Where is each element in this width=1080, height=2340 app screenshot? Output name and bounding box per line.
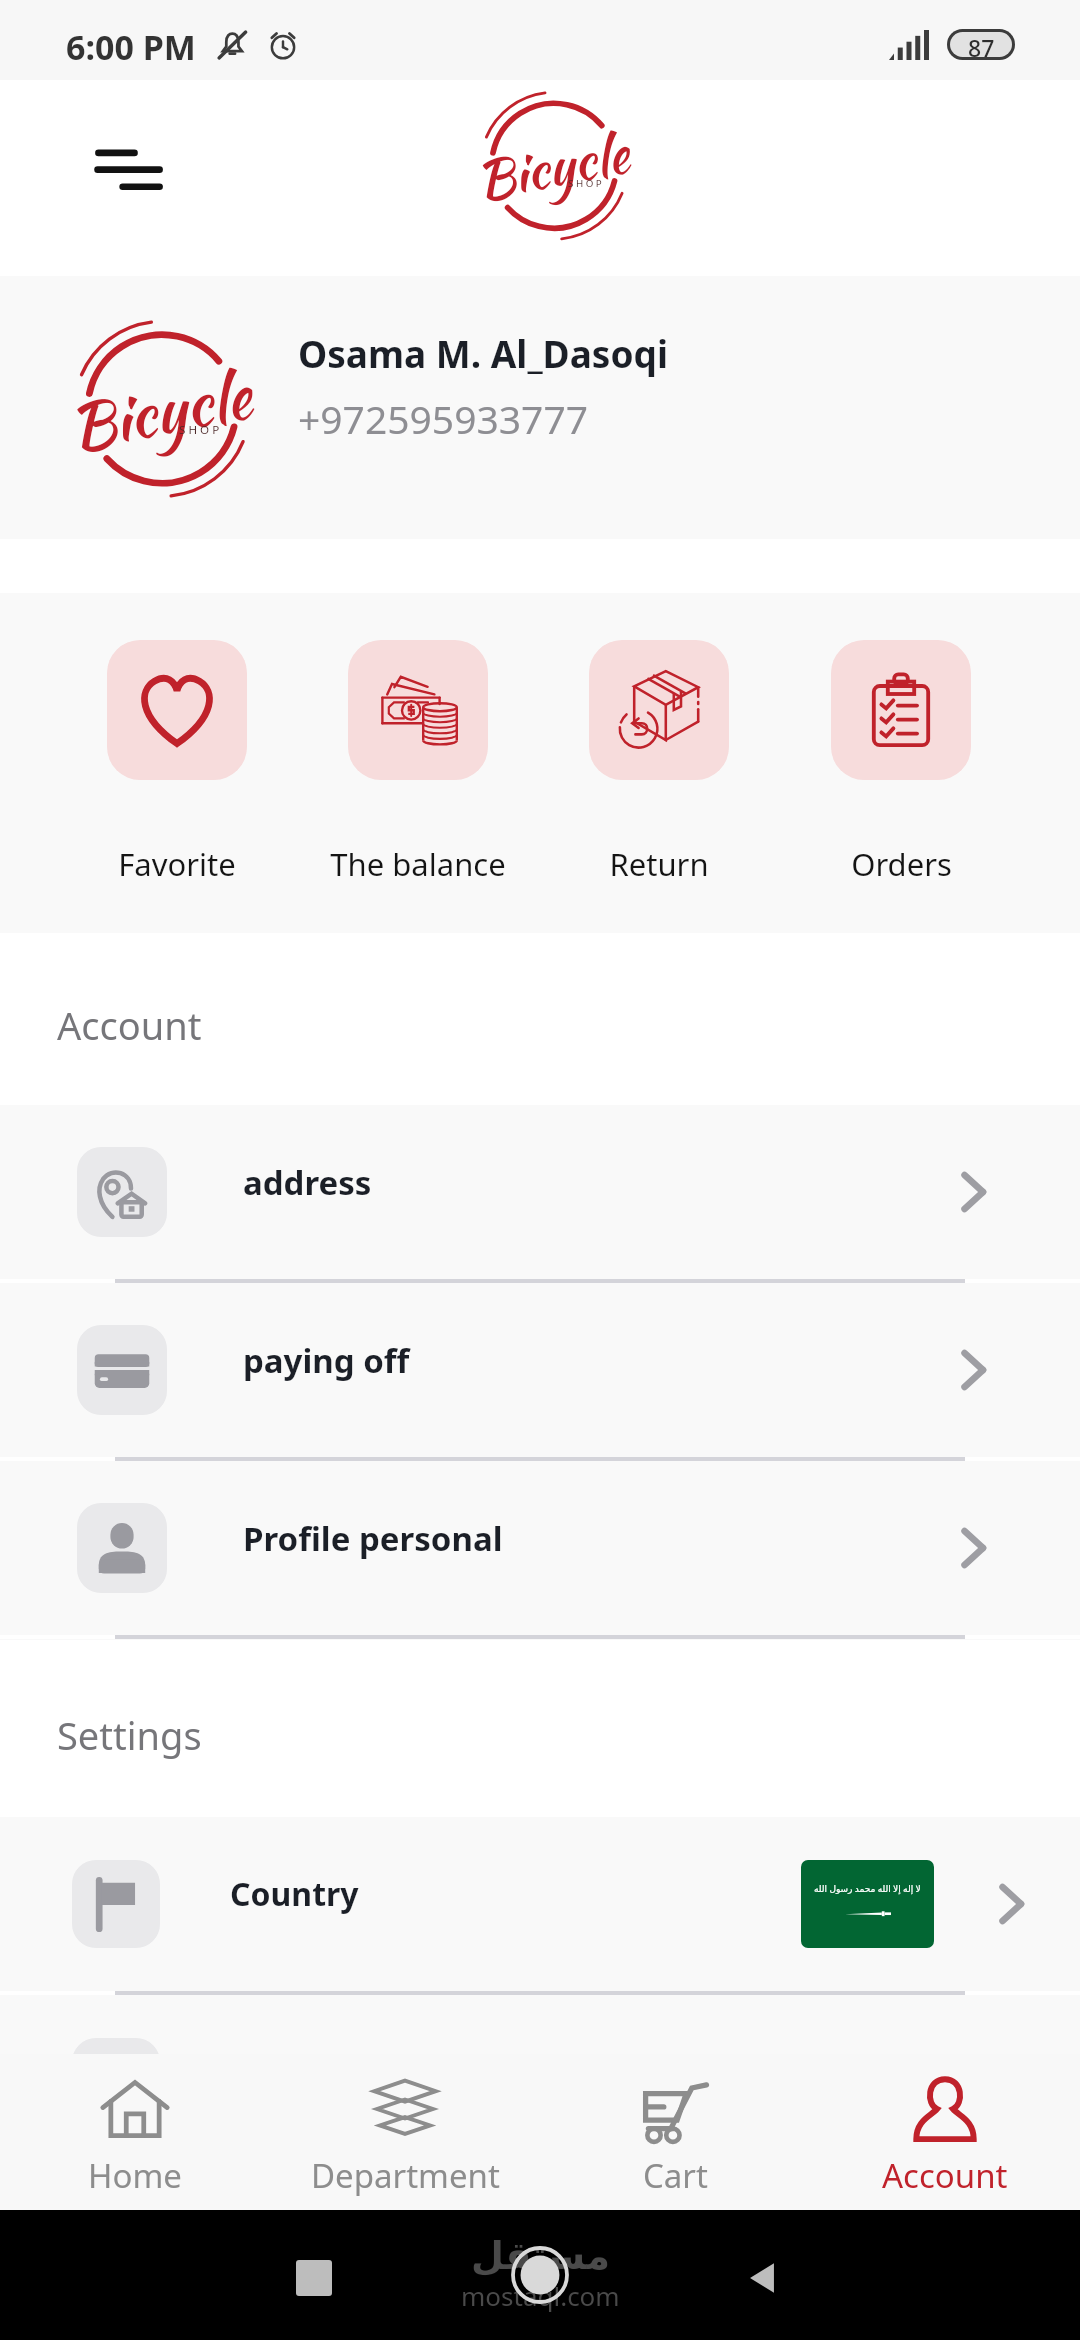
button[interactable]: Return [538, 593, 780, 885]
button[interactable]: address [0, 1105, 1080, 1283]
staticText: مستقل [471, 2234, 610, 2278]
staticText: SHOP [568, 177, 605, 190]
button[interactable]: The balance [297, 593, 538, 885]
staticText: paying off [243, 1338, 410, 1383]
button[interactable]: Recents [296, 2260, 332, 2296]
staticText: Settings [57, 1709, 202, 1761]
staticText: Country [230, 1872, 359, 1916]
button[interactable]: Cart [540, 2057, 810, 2208]
button[interactable]: Menu [76, 134, 164, 222]
staticText: Account [57, 999, 202, 1051]
staticText: Osama M. Al_Dasoqi [298, 328, 668, 378]
button[interactable]: Home [0, 2057, 270, 2208]
staticText: Account [882, 2153, 1008, 2198]
button[interactable]: Orders [780, 593, 1022, 885]
button[interactable]: Home [513, 2248, 567, 2302]
staticText: mostaql.com [461, 2278, 620, 2313]
staticText: 87 [968, 32, 995, 57]
button[interactable]: Back [739, 2255, 785, 2301]
staticText: address [243, 1160, 372, 1205]
staticText: The balance [330, 843, 506, 885]
staticText: Department [311, 2153, 500, 2198]
staticText: Favorite [118, 843, 236, 885]
staticText: 6:00 PM [66, 24, 196, 70]
staticText: لا إله إلا الله محمد رسول الله [814, 1882, 921, 1894]
button[interactable]: paying off [0, 1283, 1080, 1461]
button[interactable]: Bicycle [0, 276, 1080, 539]
staticText: Bicycle [61, 349, 259, 474]
staticText: Profile personal [243, 1516, 503, 1561]
staticText: Return [609, 843, 709, 885]
staticText: Cart [643, 2153, 708, 2198]
button[interactable]: Department [270, 2057, 540, 2208]
button[interactable]: Favorite [56, 593, 297, 885]
staticText: Bicycle [469, 115, 636, 220]
button[interactable]: Country [0, 1817, 1080, 1995]
button[interactable]: Account [810, 2057, 1080, 2208]
staticText: SHOP [179, 422, 223, 438]
button[interactable]: Profile personal [0, 1461, 1080, 1639]
staticText: Home [88, 2153, 182, 2198]
staticText: Orders [851, 843, 952, 885]
staticText: +972595933777 [298, 392, 589, 445]
